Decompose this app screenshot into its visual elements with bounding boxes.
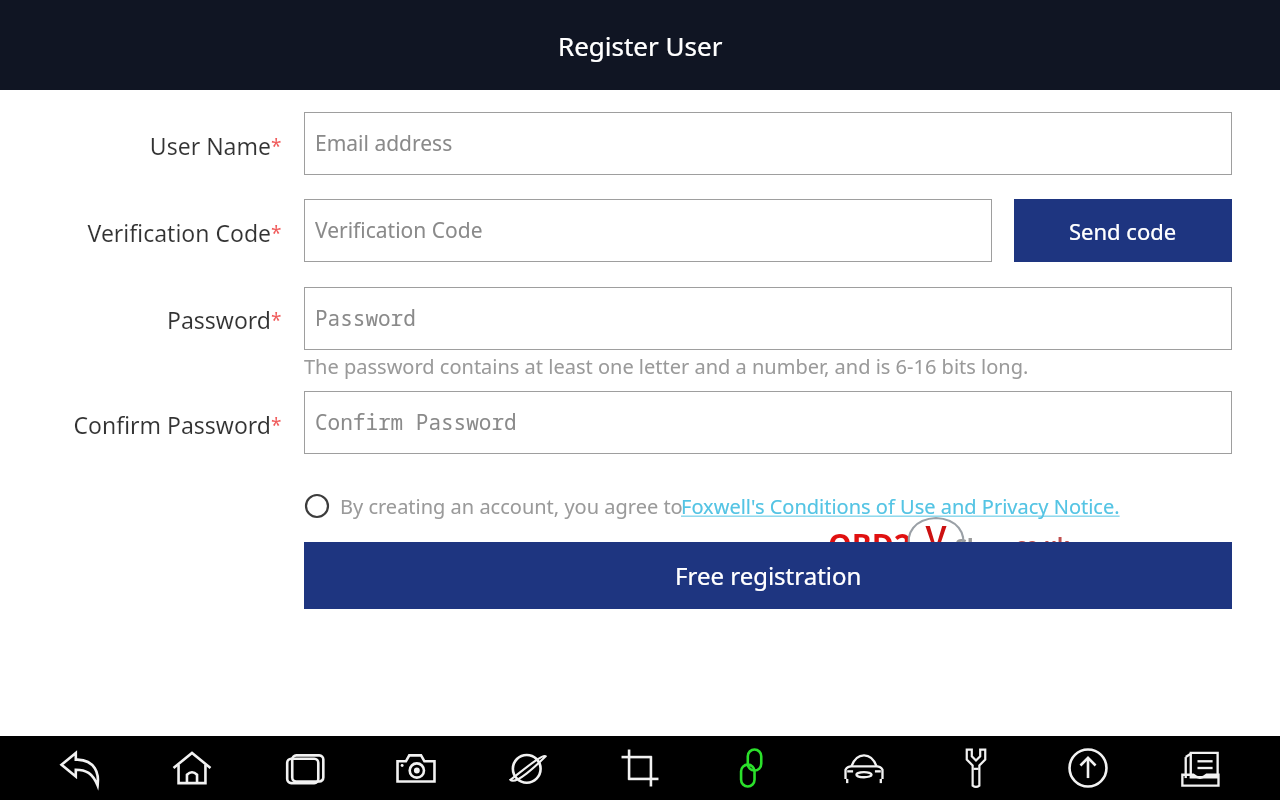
staticText: Register User — [558, 28, 723, 63]
button[interactable]: By creating an account, you agree to — [300, 488, 688, 524]
button[interactable]: Free registration — [304, 542, 1232, 609]
staticText: User Name — [149, 130, 271, 161]
staticText: Confirm Password — [73, 409, 271, 440]
button[interactable]: Verification Code — [304, 199, 992, 262]
staticText: Send code — [1069, 216, 1177, 246]
staticText: Foxwell's Conditions of Use and Privacy … — [681, 493, 1120, 520]
button[interactable]: Send code — [1014, 199, 1232, 262]
staticText: Shop — [955, 530, 1010, 560]
button[interactable]: Confirm Password — [304, 391, 1232, 454]
button[interactable]: Email address — [304, 112, 1232, 175]
button[interactable]: Reports — [1168, 736, 1232, 800]
staticText: * — [271, 412, 282, 438]
staticText: * — [271, 220, 282, 246]
button[interactable]: Password — [304, 287, 1232, 350]
staticText: Confirm Password — [315, 408, 517, 437]
button[interactable]: Vehicle — [832, 736, 896, 800]
button[interactable]: Recent apps — [272, 736, 336, 800]
staticText: OBD2 — [828, 524, 911, 565]
button[interactable]: Upload — [1056, 736, 1120, 800]
staticText: By creating an account, you agree to — [340, 493, 688, 520]
staticText: The password contains at least one lette… — [304, 353, 1029, 380]
staticText: Verification Code — [87, 217, 271, 248]
staticText: * — [271, 307, 282, 333]
button[interactable]: Browser — [496, 736, 560, 800]
staticText: .co.uk — [1010, 531, 1070, 558]
staticText: Free registration — [675, 559, 862, 592]
button[interactable]: Connection — [720, 736, 784, 800]
staticText: Email address — [315, 129, 453, 158]
button[interactable]: Tools — [944, 736, 1008, 800]
button[interactable]: Crop screenshot — [608, 736, 672, 800]
button[interactable]: Home — [160, 736, 224, 800]
button[interactable]: Back — [48, 736, 112, 800]
button[interactable]: Foxwell's Conditions of Use and Privacy … — [681, 493, 1120, 520]
button[interactable]: Screenshot camera — [384, 736, 448, 800]
staticText: * — [271, 133, 282, 159]
staticText: Password — [166, 304, 271, 335]
staticText: Verification Code — [315, 216, 483, 245]
staticText: Password — [315, 304, 416, 333]
